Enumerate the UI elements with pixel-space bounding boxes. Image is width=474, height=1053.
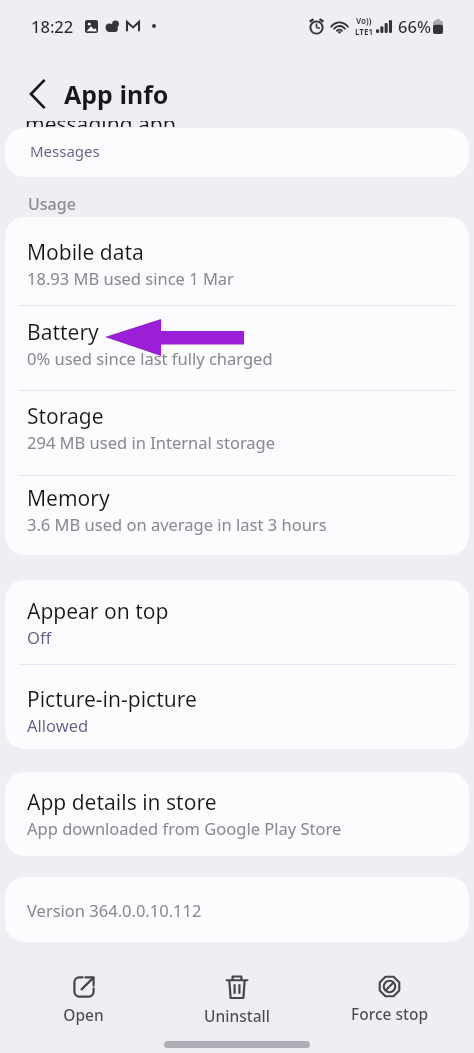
button[interactable]: Picture-in-picture [5,665,469,749]
button[interactable]: Appear on top [5,580,469,664]
button[interactable]: Force stop [313,975,466,1036]
staticText: 66% [398,15,431,37]
staticText: Vo)) [356,15,372,26]
button[interactable]: Messages [5,128,469,177]
staticText: 18:22 [31,15,74,37]
staticText: Messages [30,141,100,161]
staticText: Usage [28,193,76,215]
staticText: Open [63,1004,104,1025]
staticText: messaging app [25,121,176,127]
staticText: Appear on top [27,597,169,626]
staticText: Uninstall [204,1005,270,1026]
button[interactable]: Memory [5,476,469,555]
button[interactable]: Battery [5,306,469,390]
staticText: Force stop [351,1003,428,1024]
staticText: App details in store [27,788,217,817]
staticText: Mobile data [27,238,144,267]
button[interactable]: Uninstall [160,975,313,1036]
staticText: Battery [27,318,99,347]
staticText: Off [27,626,52,648]
button[interactable]: App details in store [5,772,469,856]
staticText: Storage [27,402,104,431]
staticText: App downloaded from Google Play Store [27,817,342,839]
staticText: 0% used since last fully charged [27,347,273,369]
button[interactable]: Back [22,79,52,109]
staticText: 18.93 MB used since 1 Mar [27,267,234,289]
staticText: 294 MB used in Internal storage [27,431,276,453]
button[interactable]: Mobile data [5,217,469,305]
staticText: Memory [27,484,110,513]
button[interactable]: Open [7,975,160,1036]
staticText: Allowed [27,714,89,736]
staticText: 3.6 MB used on average in last 3 hours [27,513,327,535]
staticText: Version 364.0.0.10.112 [27,899,202,921]
staticText: Picture-in-picture [27,685,197,714]
button[interactable]: Storage [5,391,469,475]
staticText: App info [64,77,169,111]
staticText: LTE1 [355,26,373,37]
